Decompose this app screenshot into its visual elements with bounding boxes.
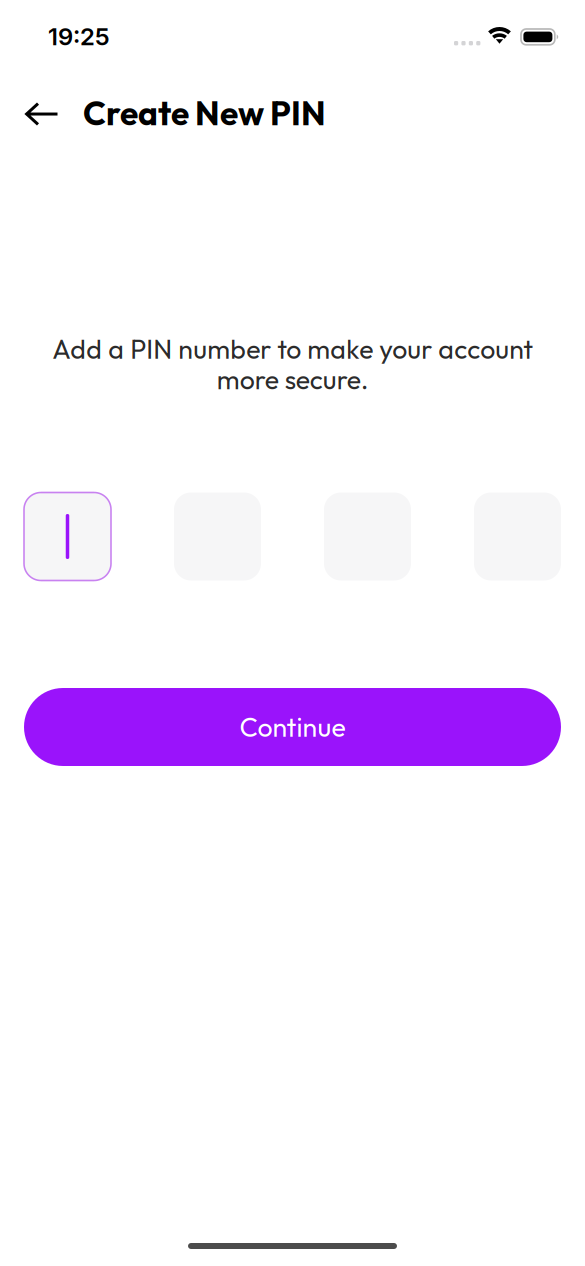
staticText: 19:25 bbox=[48, 22, 110, 51]
button[interactable]: Continue bbox=[24, 688, 561, 766]
button[interactable]: Back bbox=[14, 89, 74, 139]
staticText: Create New PIN bbox=[83, 92, 326, 134]
staticText: Add a PIN number to make your account mo… bbox=[52, 332, 533, 396]
staticText: Continue bbox=[239, 710, 345, 744]
